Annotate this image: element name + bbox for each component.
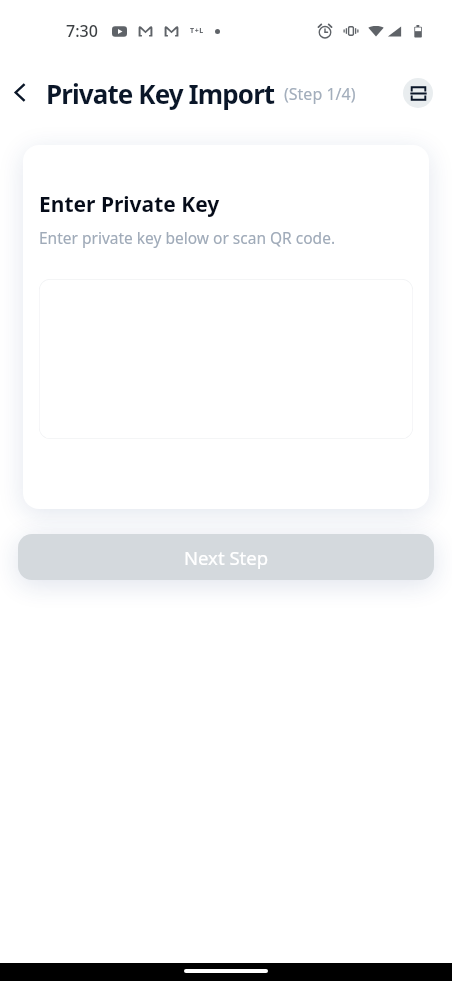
- staticText: T+L: [190, 26, 204, 36]
- staticText: Enter Private Key: [39, 190, 220, 219]
- staticText: Enter private key below or scan QR code.: [39, 227, 336, 248]
- button[interactable]: Next Step: [18, 534, 434, 580]
- staticText: Next Step: [184, 545, 269, 570]
- button[interactable]: Back: [2, 74, 38, 110]
- staticText: 7:30: [66, 20, 98, 42]
- staticText: Private Key Import: [46, 76, 275, 111]
- staticText: (Step 1/4): [284, 83, 356, 105]
- button[interactable]: Scan QR code: [403, 78, 433, 108]
